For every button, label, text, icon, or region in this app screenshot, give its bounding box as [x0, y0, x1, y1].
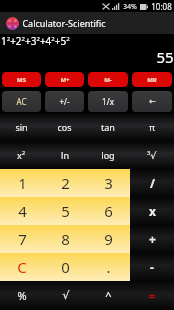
button[interactable]: π [130, 113, 174, 141]
staticText: cos [57, 121, 72, 133]
button[interactable]: ← [132, 91, 172, 112]
button[interactable]: 5 [44, 197, 87, 225]
staticText: x2 [17, 149, 26, 161]
button[interactable]: / [130, 169, 174, 197]
staticText: ln [61, 149, 69, 161]
staticText: AC [16, 96, 27, 107]
staticText: ← [149, 97, 156, 106]
staticText: % [17, 288, 27, 303]
staticText: 4 [18, 201, 27, 221]
staticText: π [149, 121, 155, 133]
button[interactable]: 2 [44, 169, 87, 197]
staticText: ^ [105, 288, 112, 303]
staticText: 10:08 [151, 1, 172, 12]
staticText: 3 [104, 173, 113, 193]
button[interactable]: sin [0, 113, 43, 141]
staticText: / [150, 175, 155, 191]
staticText: - [150, 259, 154, 275]
button[interactable]: MR [132, 72, 172, 87]
button[interactable]: 0 [44, 253, 87, 281]
staticText: log [101, 149, 115, 161]
button[interactable]: ln [43, 141, 86, 169]
button[interactable]: - [130, 253, 174, 281]
staticText: 3√ [147, 149, 157, 161]
button[interactable]: M+ [45, 72, 84, 87]
staticText: tan [101, 121, 115, 133]
staticText: 12+22+32+42+52 [1, 34, 70, 48]
button[interactable]: tan [86, 113, 130, 141]
staticText: 2 [61, 173, 70, 193]
staticText: √ [62, 289, 70, 302]
button[interactable]: M- [88, 72, 128, 87]
button[interactable]: 7 [0, 225, 44, 253]
staticText: 9 [104, 229, 113, 249]
staticText: 5 [61, 201, 70, 221]
button[interactable]: x2 [0, 141, 43, 169]
button[interactable]: √ [44, 281, 87, 310]
staticText: 6 [104, 201, 113, 221]
staticText: C [17, 257, 27, 277]
button[interactable]: C [0, 253, 44, 281]
button[interactable]: x [130, 197, 174, 225]
button[interactable]: 1/x [88, 91, 128, 112]
staticText: 0 [61, 257, 70, 277]
button[interactable]: + [130, 225, 174, 253]
staticText: M- [104, 76, 112, 84]
button[interactable]: 8 [44, 225, 87, 253]
staticText: = [148, 287, 156, 305]
button[interactable]: AC [2, 91, 41, 112]
button[interactable]: +/- [45, 91, 84, 112]
staticText: 34% [123, 2, 137, 12]
staticText: MR [147, 76, 157, 84]
button[interactable]: ^ [87, 281, 130, 310]
staticText: Calculator-Scientific [22, 17, 106, 29]
staticText: . [106, 257, 111, 277]
other: App icon [6, 17, 19, 30]
button[interactable]: 3√ [130, 141, 174, 169]
staticText: + [149, 231, 156, 247]
button[interactable]: 1 [0, 169, 44, 197]
button[interactable]: 6 [87, 197, 130, 225]
staticText: 55 [156, 47, 174, 67]
staticText: +/- [59, 96, 70, 107]
button[interactable]: = [130, 281, 174, 310]
button[interactable]: % [0, 281, 44, 310]
button[interactable]: log [86, 141, 130, 169]
staticText: 1/x [102, 96, 114, 107]
button[interactable]: 4 [0, 197, 44, 225]
staticText: 8 [61, 229, 70, 249]
staticText: M+ [60, 76, 70, 84]
staticText: sin [15, 121, 28, 133]
button[interactable]: MS [2, 72, 41, 87]
button[interactable]: cos [43, 113, 86, 141]
staticText: MS [17, 76, 26, 84]
staticText: 1 [18, 173, 27, 193]
staticText: x [149, 203, 156, 219]
button[interactable]: . [87, 253, 130, 281]
button[interactable]: 3 [87, 169, 130, 197]
staticText: 7 [18, 229, 27, 249]
button[interactable]: 9 [87, 225, 130, 253]
